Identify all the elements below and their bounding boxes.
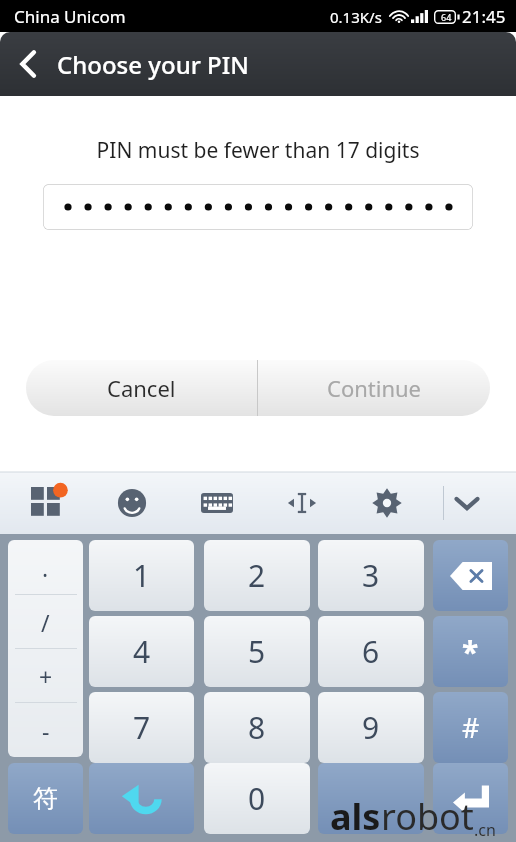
staticText: als [330, 792, 381, 841]
staticText: - [42, 715, 50, 746]
staticText: 0 [248, 778, 266, 819]
staticText: China Unicom [14, 5, 126, 28]
staticText: 8 [248, 707, 266, 748]
button[interactable]: 2 [204, 540, 310, 611]
button[interactable]: Hide keyboard [438, 474, 496, 532]
staticText: PIN must be fewer than 17 digits [0, 136, 516, 165]
button[interactable]: Cancel [26, 360, 257, 416]
staticText: # [462, 709, 480, 746]
button[interactable]: Keyboard [188, 474, 246, 532]
staticText: robot [381, 792, 474, 841]
staticText: 9 [362, 707, 380, 748]
button[interactable]: Back [0, 32, 56, 96]
staticText: 7 [133, 707, 151, 748]
staticText: + [39, 661, 53, 692]
button[interactable]: 4 [89, 616, 194, 687]
button[interactable]: 1 [89, 540, 194, 611]
button[interactable]: 9 [318, 692, 424, 763]
staticText: Continue [327, 373, 422, 403]
staticText: .cn [474, 819, 496, 841]
button[interactable]: 6 [318, 616, 424, 687]
button[interactable]: Space [318, 763, 424, 834]
button[interactable]: 符 symbols [8, 763, 83, 834]
button[interactable]: Enter [433, 763, 508, 834]
button[interactable]: Move cursor [273, 474, 331, 532]
button[interactable]: / [8, 595, 83, 649]
staticText: 5 [248, 631, 266, 672]
staticText: / [41, 607, 50, 638]
staticText: 1 [133, 555, 151, 596]
staticText: 2 [248, 555, 266, 596]
button[interactable]: Backspace [433, 540, 508, 611]
button[interactable]: Hash [433, 692, 508, 763]
staticText: 21:45 [462, 5, 506, 28]
button[interactable]: Emoji [103, 474, 161, 532]
staticText: . [42, 552, 49, 583]
staticText: Cancel [107, 373, 176, 403]
button[interactable]: Undo [89, 763, 194, 834]
button[interactable]: 7 [89, 692, 194, 763]
button[interactable] [43, 184, 473, 230]
button[interactable]: 8 [204, 692, 310, 763]
button[interactable]: 3 [318, 540, 424, 611]
staticText: 6 [362, 631, 380, 672]
button[interactable]: + [8, 649, 83, 703]
staticText: 4 [133, 631, 151, 672]
button[interactable]: 5 [204, 616, 310, 687]
staticText: * [462, 631, 479, 672]
button[interactable]: - [8, 703, 83, 757]
staticText: Choose your PIN [57, 48, 249, 81]
staticText: 符 [33, 783, 58, 814]
button[interactable]: Settings [358, 474, 416, 532]
staticText: 3 [362, 555, 380, 596]
staticText: 0.13K/s [330, 7, 382, 27]
button[interactable]: Continue [258, 360, 490, 416]
button[interactable]: 0 [204, 763, 310, 834]
button[interactable]: . [8, 540, 83, 595]
button[interactable]: Asterisk [433, 616, 508, 687]
button[interactable]: Apps [18, 474, 76, 532]
staticText: 64 [441, 11, 452, 23]
